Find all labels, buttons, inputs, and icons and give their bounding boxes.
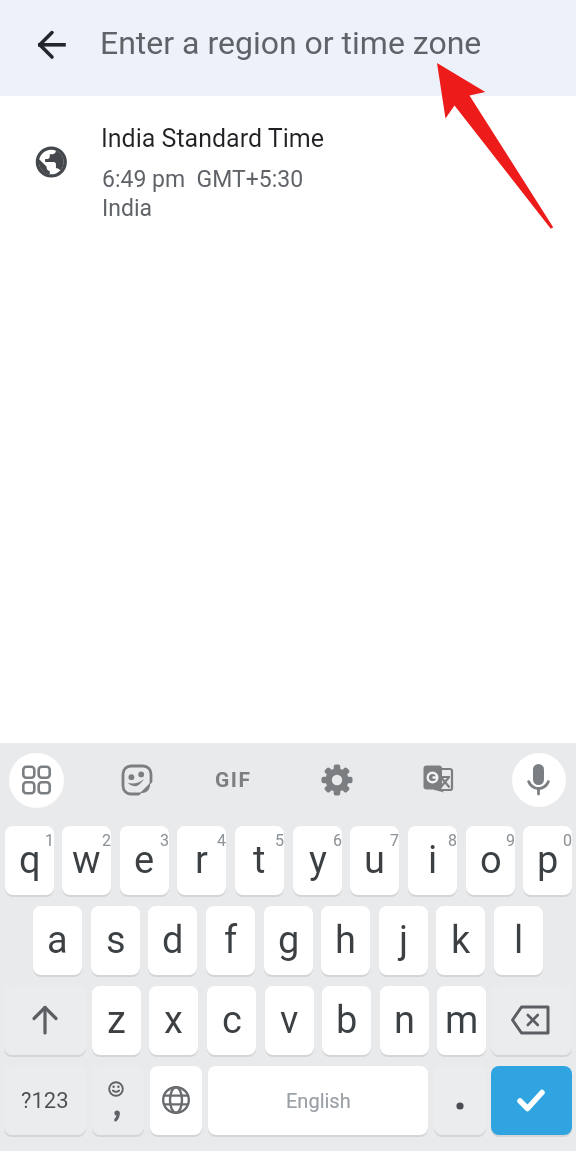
button[interactable]: i (408, 826, 457, 895)
button[interactable]: j (379, 906, 428, 975)
staticText: 8 (448, 831, 457, 850)
button[interactable]: r (177, 826, 226, 895)
staticText: f (224, 918, 238, 963)
button[interactable]: English (208, 1066, 428, 1135)
staticText: 0 (563, 831, 572, 850)
staticText: q (19, 838, 41, 883)
button[interactable]: b (322, 986, 371, 1055)
staticText: l (514, 918, 524, 963)
staticText: b (336, 998, 358, 1043)
staticText: r (195, 838, 208, 883)
staticText: India (102, 195, 153, 222)
button[interactable] (512, 753, 566, 807)
staticText: Enter a region or time zone (100, 24, 482, 62)
button[interactable]: l (494, 906, 543, 975)
button[interactable]: t (235, 826, 284, 895)
button[interactable]: s (91, 906, 140, 975)
staticText: 3 (160, 831, 169, 850)
button[interactable] (92, 1066, 144, 1135)
button[interactable]: e (120, 826, 169, 895)
button[interactable]: d (148, 906, 197, 975)
staticText: English (286, 1089, 351, 1112)
button[interactable] (434, 1066, 486, 1135)
button[interactable]: g (264, 906, 313, 975)
staticText: h (335, 918, 356, 963)
button[interactable]: m (437, 986, 486, 1055)
button[interactable]: k (436, 906, 485, 975)
button[interactable]: a (33, 906, 82, 975)
staticText: 7 (390, 831, 399, 850)
staticText: 4 (217, 831, 226, 850)
staticText: k (451, 918, 471, 963)
staticText: s (106, 918, 126, 963)
staticText: j (399, 918, 409, 963)
button[interactable] (9, 753, 64, 808)
button[interactable]: ?123 (4, 1066, 86, 1135)
button[interactable]: q (5, 826, 54, 895)
staticText: m (445, 998, 479, 1043)
staticText: a (47, 918, 68, 963)
staticText: z (107, 998, 126, 1043)
button[interactable]: z (92, 986, 141, 1055)
staticText: y (309, 838, 327, 883)
staticText: GIF (215, 768, 252, 793)
button[interactable]: India Standard Time (0, 96, 576, 236)
staticText: u (364, 838, 385, 883)
staticText: 6:49 pm GMT+5:30 (102, 166, 304, 193)
staticText: 5 (275, 831, 284, 850)
staticText: c (222, 998, 242, 1043)
button[interactable] (491, 1066, 572, 1135)
button[interactable]: c (207, 986, 256, 1055)
staticText: x (164, 998, 183, 1043)
button[interactable]: x (149, 986, 198, 1055)
staticText: p (537, 838, 559, 883)
staticText: n (394, 998, 415, 1043)
staticText: g (278, 918, 300, 963)
button[interactable]: p (523, 826, 572, 895)
staticText: 9 (506, 831, 515, 850)
button[interactable]: n (380, 986, 429, 1055)
button[interactable]: y (293, 826, 342, 895)
staticText: d (162, 918, 184, 963)
button[interactable] (491, 986, 572, 1055)
button[interactable] (4, 986, 86, 1055)
staticText: India Standard Time (101, 124, 324, 153)
staticText: t (253, 838, 266, 883)
staticText: i (428, 838, 438, 883)
button[interactable]: u (350, 826, 399, 895)
staticText: 2 (102, 831, 111, 850)
staticText: o (480, 838, 502, 883)
staticText: w (72, 838, 101, 883)
button[interactable]: o (466, 826, 515, 895)
button[interactable]: f (206, 906, 255, 975)
button[interactable]: v (265, 986, 314, 1055)
button[interactable]: Enter a region or time zone (0, 0, 576, 96)
button[interactable]: h (321, 906, 370, 975)
staticText: 1 (45, 831, 54, 850)
button[interactable] (150, 1066, 202, 1135)
staticText: 6 (333, 831, 342, 850)
button[interactable]: w (62, 826, 111, 895)
staticText: v (280, 998, 299, 1043)
staticText: ?123 (21, 1088, 69, 1114)
staticText: e (134, 838, 155, 883)
